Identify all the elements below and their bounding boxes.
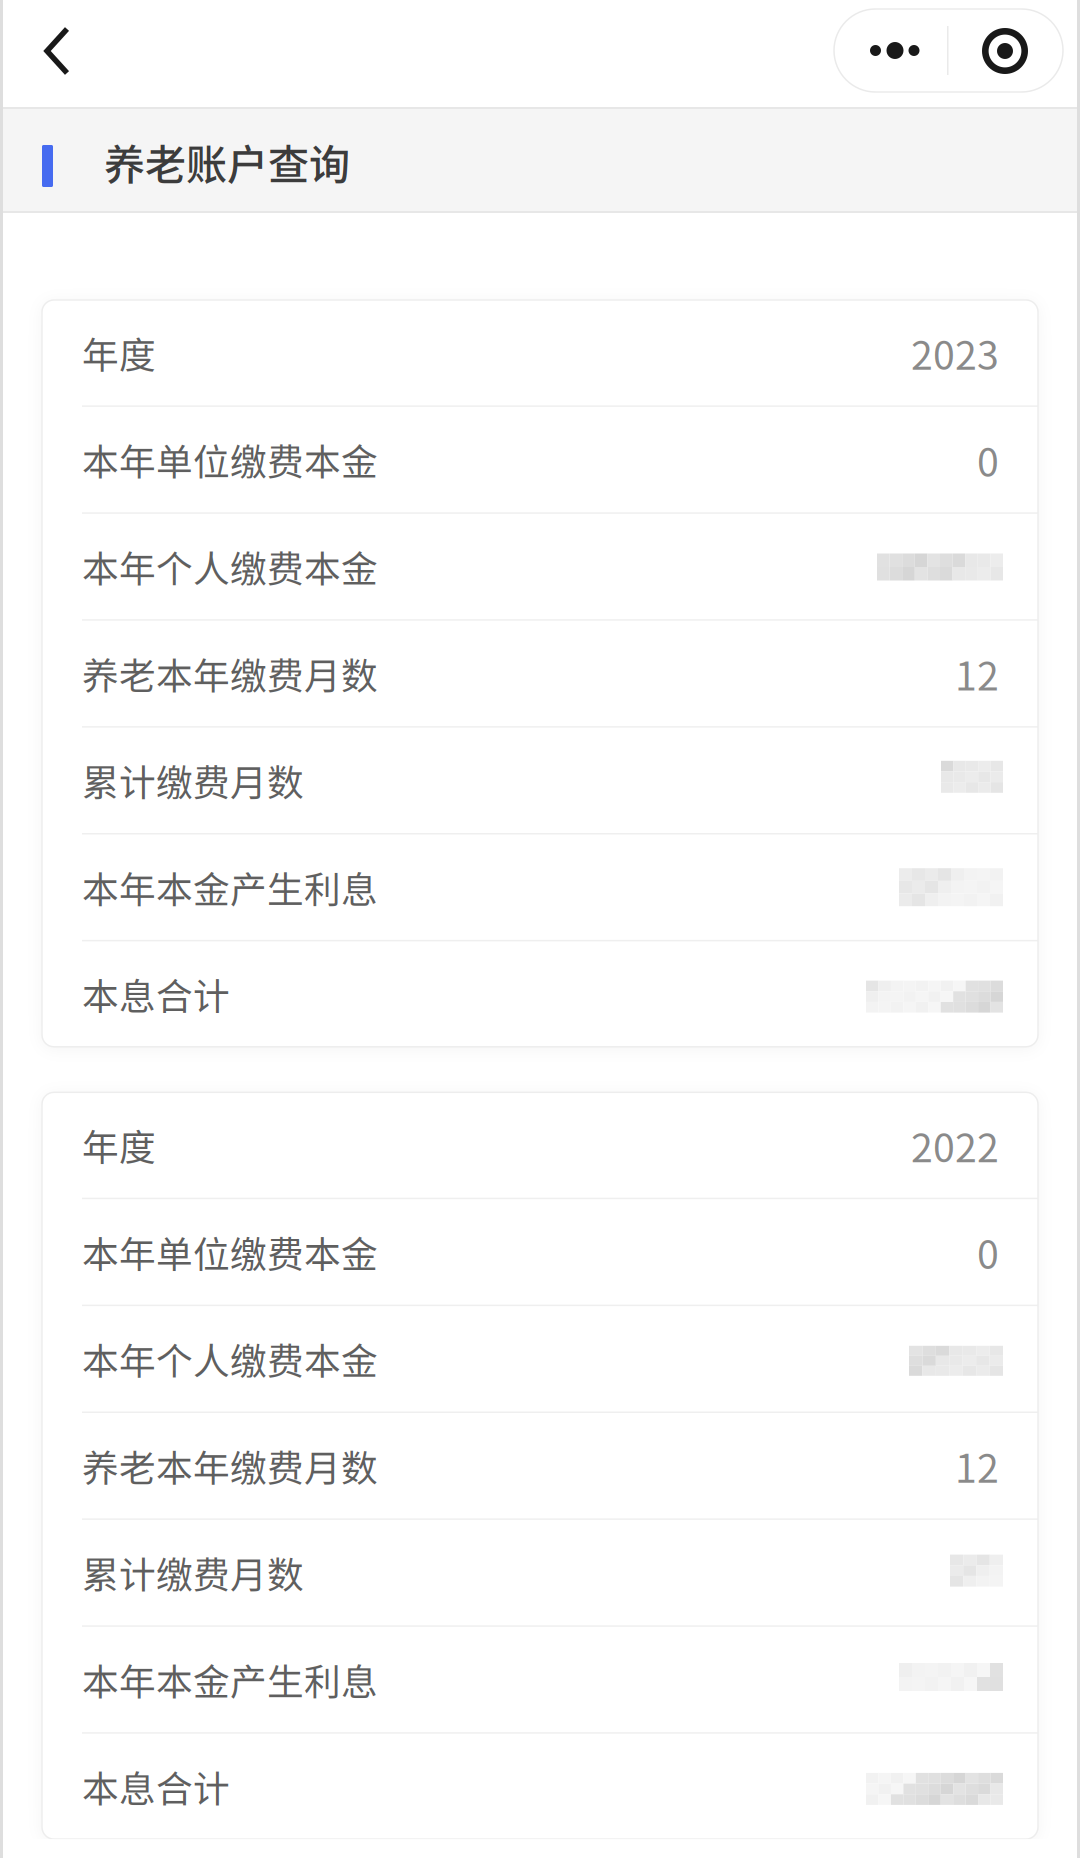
- staticText: 累计缴费月数: [82, 754, 304, 807]
- staticText: 2023: [911, 324, 999, 381]
- staticText: 养老账户查询: [104, 132, 350, 191]
- staticText: 年度: [82, 1118, 156, 1172]
- staticText: 本年个人缴费本金: [82, 540, 378, 593]
- staticText: 2022: [911, 1116, 999, 1173]
- staticText: 12: [955, 1437, 999, 1494]
- staticText: 本息合计: [82, 1760, 230, 1813]
- staticText: 本年本金产生利息: [82, 861, 378, 914]
- button[interactable]: Back: [25, 18, 89, 84]
- staticText: 0: [977, 1223, 999, 1280]
- staticText: 养老本年缴费月数: [82, 1439, 378, 1492]
- staticText: 0: [977, 431, 999, 488]
- staticText: 累计缴费月数: [82, 1546, 304, 1599]
- staticText: 本息合计: [82, 968, 230, 1021]
- staticText: 年度: [82, 326, 156, 379]
- button[interactable]: More options and close: [834, 9, 1063, 92]
- staticText: 养老本年缴费月数: [82, 647, 378, 700]
- staticText: 本年本金产生利息: [82, 1653, 378, 1706]
- staticText: 本年个人缴费本金: [82, 1332, 378, 1385]
- staticText: 本年单位缴费本金: [82, 433, 378, 486]
- staticText: 12: [955, 645, 999, 702]
- staticText: 本年单位缴费本金: [82, 1225, 378, 1278]
